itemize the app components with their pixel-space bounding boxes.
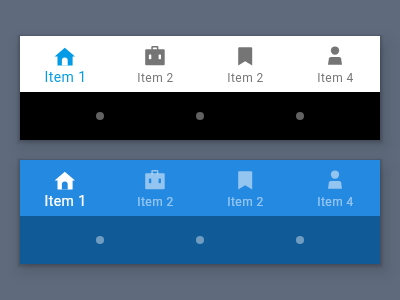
button[interactable]: Item 2 xyxy=(200,36,290,92)
button[interactable]: Home xyxy=(196,236,204,244)
staticText: Item 4 xyxy=(317,195,354,209)
button[interactable]: Item 2 xyxy=(200,160,290,216)
button[interactable]: Back xyxy=(96,236,104,244)
button[interactable]: Item 1 xyxy=(20,36,110,92)
button[interactable]: Home xyxy=(196,112,204,120)
button[interactable]: Back xyxy=(96,112,104,120)
button[interactable]: Item 2 xyxy=(110,160,200,216)
staticText: Item 2 xyxy=(227,195,264,209)
button[interactable]: Item 2 xyxy=(110,36,200,92)
staticText: Item 1 xyxy=(44,69,87,85)
staticText: Item 2 xyxy=(227,71,264,85)
staticText: Item 2 xyxy=(137,195,174,209)
button[interactable]: Item 1 xyxy=(20,160,110,216)
staticText: Item 2 xyxy=(137,71,174,85)
button[interactable]: Recents xyxy=(296,112,304,120)
staticText: Item 1 xyxy=(44,193,87,209)
staticText: Item 4 xyxy=(317,71,354,85)
button[interactable]: Item 4 xyxy=(290,36,380,92)
button[interactable]: Item 4 xyxy=(290,160,380,216)
button[interactable]: Recents xyxy=(296,236,304,244)
